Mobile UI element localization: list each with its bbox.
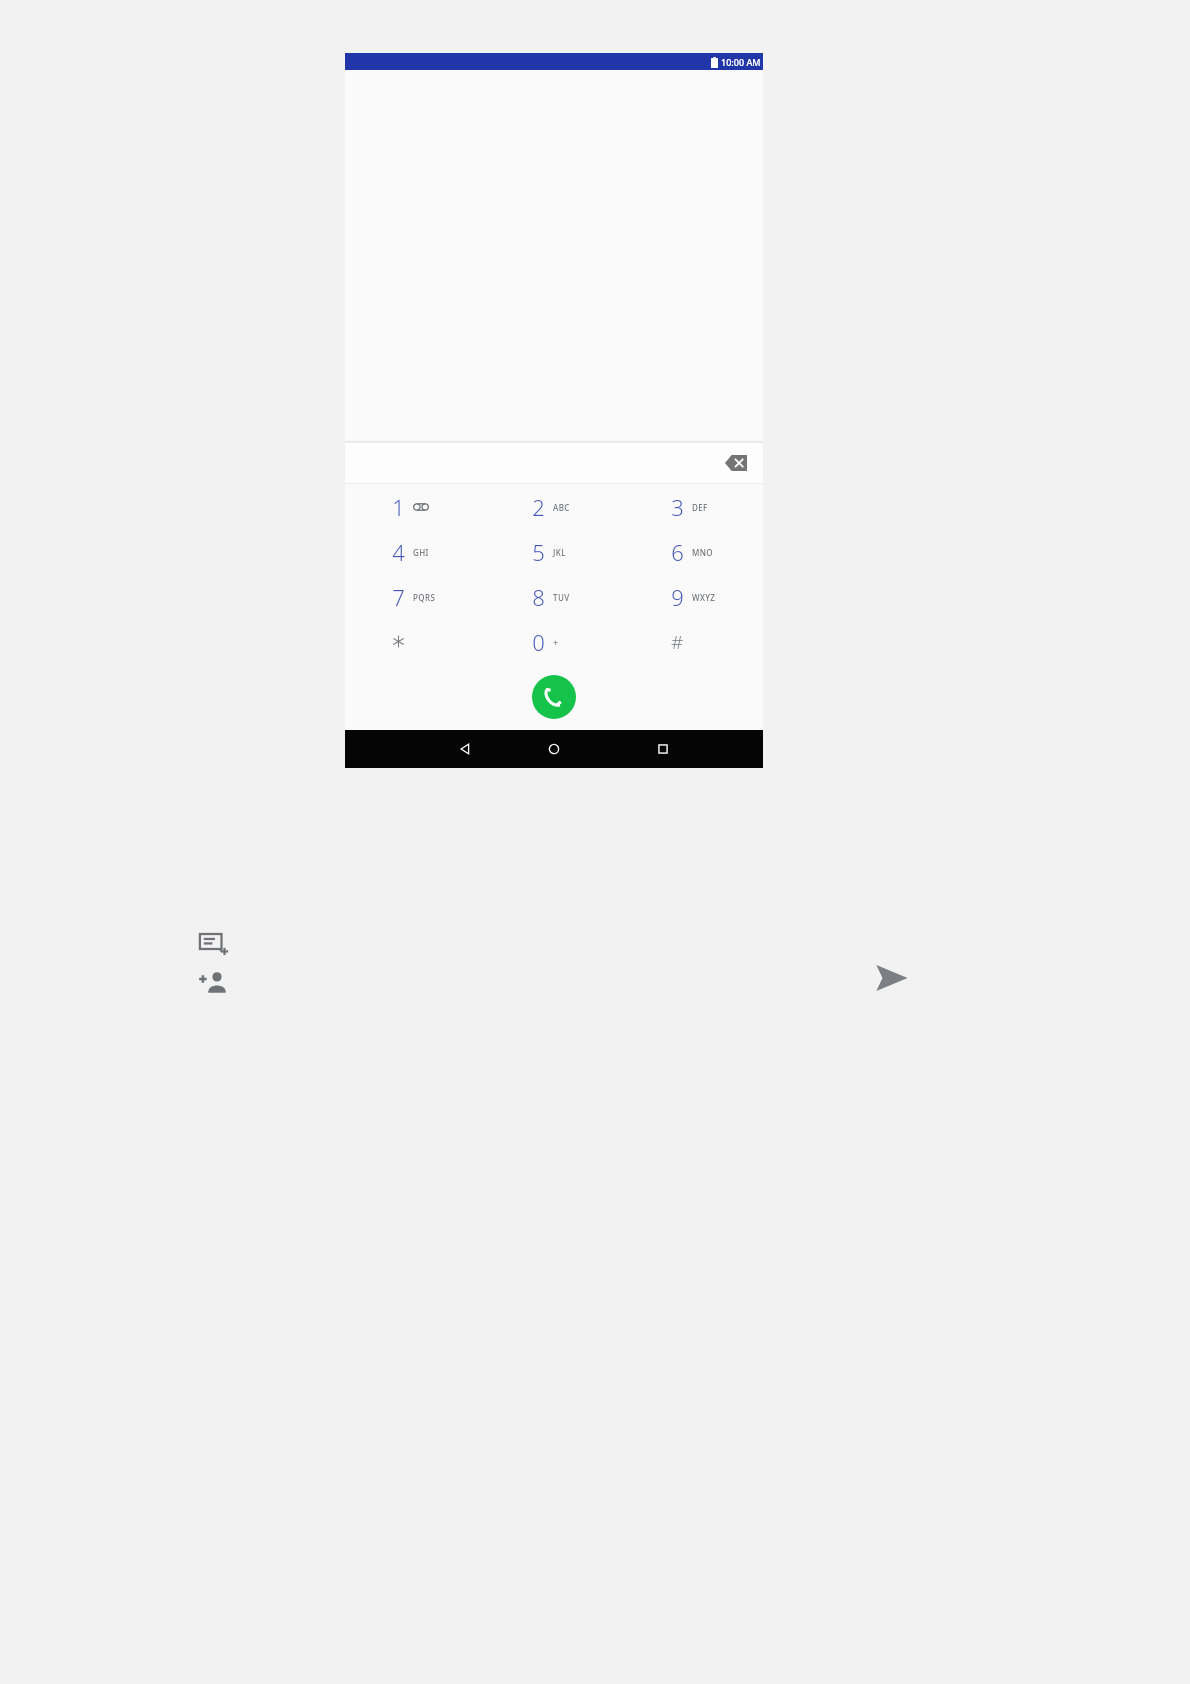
button[interactable]: 3 bbox=[624, 484, 763, 529]
staticText: 5 bbox=[532, 537, 545, 567]
button[interactable]: 7 bbox=[345, 574, 485, 619]
button[interactable]: New message bbox=[196, 925, 232, 961]
button[interactable]: 4 bbox=[345, 529, 485, 574]
staticText: 6 bbox=[671, 537, 684, 567]
button[interactable]: 9 bbox=[624, 574, 763, 619]
button[interactable]: 1 bbox=[345, 484, 485, 529]
button[interactable]: Add contact bbox=[196, 964, 232, 1000]
staticText: ABC bbox=[553, 502, 570, 513]
button[interactable]: 0 bbox=[485, 619, 624, 664]
button[interactable]: 6 bbox=[624, 529, 763, 574]
staticText: 2 bbox=[532, 492, 545, 522]
button[interactable]: Back bbox=[446, 730, 484, 768]
staticText: DEF bbox=[692, 502, 708, 513]
button[interactable]: 5 bbox=[485, 529, 624, 574]
button[interactable]: 2 bbox=[485, 484, 624, 529]
button[interactable]: 8 bbox=[485, 574, 624, 619]
button[interactable]: Recents bbox=[644, 730, 682, 768]
staticText: + bbox=[553, 636, 559, 648]
staticText: MNO bbox=[692, 547, 714, 558]
staticText: 4 bbox=[392, 537, 405, 567]
staticText: PQRS bbox=[413, 592, 436, 603]
staticText: 9 bbox=[671, 582, 684, 612]
button[interactable]: Home bbox=[535, 730, 573, 768]
button[interactable]: Call bbox=[532, 675, 576, 719]
staticText: GHI bbox=[413, 547, 429, 558]
button[interactable]: Delete bbox=[717, 444, 755, 482]
staticText: # bbox=[671, 629, 684, 655]
button[interactable]: Send bbox=[872, 958, 912, 998]
staticText: WXYZ bbox=[692, 592, 716, 603]
staticText: 8 bbox=[532, 582, 545, 612]
staticText: 10:00 AM bbox=[721, 56, 761, 68]
staticText: 3 bbox=[671, 492, 684, 522]
staticText: 0 bbox=[532, 627, 545, 657]
button[interactable] bbox=[345, 619, 485, 664]
staticText: 1 bbox=[392, 492, 405, 522]
button[interactable]: # bbox=[624, 619, 763, 664]
staticText: 7 bbox=[392, 582, 405, 612]
staticText: JKL bbox=[553, 547, 566, 558]
staticText: TUV bbox=[553, 592, 570, 603]
